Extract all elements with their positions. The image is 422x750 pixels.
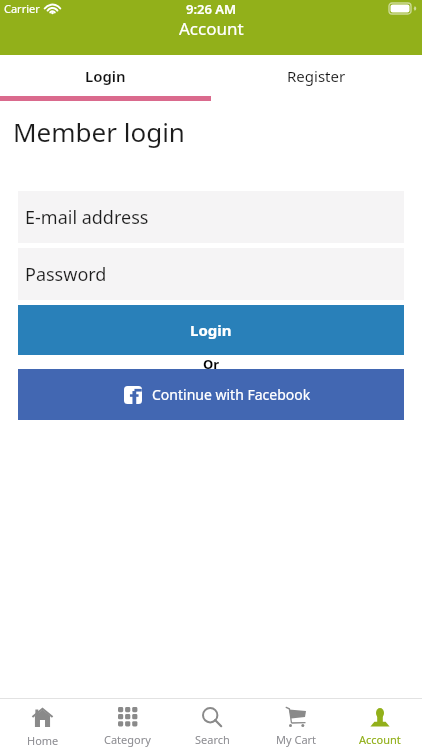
staticText: Login	[85, 66, 126, 86]
button[interactable]: Search	[170, 699, 254, 750]
button[interactable]: Password	[18, 248, 404, 300]
staticText: Member login	[13, 114, 185, 149]
staticText: Carrier	[4, 1, 40, 16]
staticText: Category	[104, 732, 151, 747]
button[interactable]: Login	[18, 305, 404, 355]
staticText: Or	[203, 355, 220, 369]
staticText: 9:26 AM	[186, 0, 237, 17]
staticText: Account	[179, 17, 244, 40]
staticText: Search	[195, 732, 230, 747]
button[interactable]: Continue with Facebook	[18, 369, 404, 420]
button[interactable]: Login	[0, 55, 211, 96]
staticText: Home	[27, 733, 59, 748]
button[interactable]: E-mail address	[18, 191, 404, 243]
staticText: E-mail address	[25, 205, 149, 230]
button[interactable]: My Cart	[254, 699, 338, 750]
staticText: Login	[190, 320, 232, 340]
button[interactable]: Account	[338, 699, 422, 750]
button[interactable]: Register	[211, 55, 422, 96]
staticText: Password	[25, 262, 107, 287]
staticText: My Cart	[276, 732, 317, 747]
button[interactable]: Category	[85, 699, 170, 750]
staticText: Continue with Facebook	[152, 385, 311, 404]
staticText: Register	[287, 66, 346, 86]
staticText: Account	[359, 732, 401, 747]
button[interactable]: Home	[0, 699, 85, 750]
